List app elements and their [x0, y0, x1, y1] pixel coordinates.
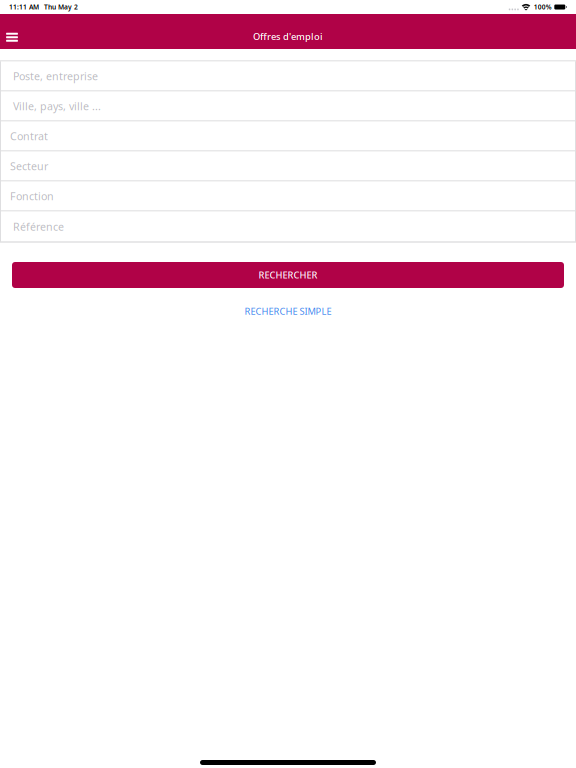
button[interactable]: Référence [1, 211, 575, 241]
button[interactable]: Poste, entreprise [1, 61, 575, 91]
staticText: Contrat [10, 129, 48, 143]
staticText: Secteur [10, 159, 48, 173]
button[interactable]: Ville, pays, ville ... [1, 91, 575, 121]
button[interactable]: RECHERCHE SIMPLE [230, 299, 345, 323]
button[interactable]: Menu [0, 25, 24, 48]
staticText: Référence [13, 219, 64, 234]
staticText: Offres d'emploi [253, 30, 323, 43]
staticText: RECHERCHE SIMPLE [244, 305, 331, 317]
staticText: Fonction [10, 189, 54, 203]
staticText: Ville, pays, ville ... [13, 99, 101, 113]
button[interactable]: Contrat [1, 121, 575, 151]
staticText: Thu May 2 [44, 3, 78, 11]
button[interactable]: Fonction [1, 181, 575, 211]
staticText: 100% [534, 3, 552, 11]
staticText: RECHERCHER [258, 269, 317, 281]
staticText: 11:11 AM [9, 3, 39, 11]
staticText: Poste, entreprise [13, 69, 98, 83]
button[interactable]: RECHERCHER [0, 262, 576, 288]
button[interactable]: Secteur [1, 151, 575, 181]
